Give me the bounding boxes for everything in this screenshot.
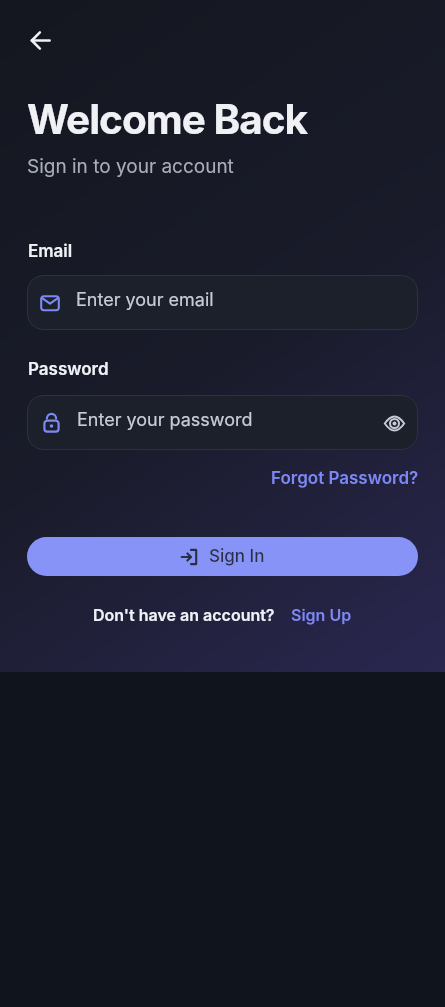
button[interactable] <box>20 20 60 60</box>
staticText: Sign in to your account <box>27 155 234 178</box>
staticText: Sign Up <box>291 605 352 624</box>
staticText: Forgot Password? <box>271 468 419 489</box>
button[interactable]: Enter your email <box>27 275 418 330</box>
button[interactable]: Sign Up <box>291 605 352 624</box>
staticText: Sign In <box>209 546 265 567</box>
staticText: Welcome Back <box>27 95 308 144</box>
staticText: Password <box>28 359 109 380</box>
button[interactable]: Sign In <box>27 537 418 576</box>
button[interactable] <box>372 401 416 445</box>
staticText: Enter your email <box>76 289 214 311</box>
button[interactable]: Enter your password <box>27 395 418 450</box>
staticText: Don't have an account? <box>93 605 275 624</box>
staticText: Enter your password <box>77 409 253 431</box>
staticText: Email <box>28 241 73 262</box>
button[interactable]: Forgot Password? <box>271 468 419 489</box>
